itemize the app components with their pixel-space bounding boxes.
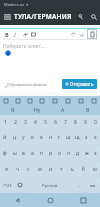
staticText: н xyxy=(49,134,53,141)
button[interactable]: Image xyxy=(29,30,37,38)
button[interactable]: 3 xyxy=(20,115,30,130)
staticText: Ну xyxy=(34,107,41,114)
button[interactable]: Undo xyxy=(69,30,77,38)
button[interactable]: Menu xyxy=(0,10,14,24)
button[interactable]: 2 xyxy=(10,115,20,130)
button[interactable]: и xyxy=(45,161,56,177)
button[interactable]: Tool 0 xyxy=(0,96,12,106)
staticText: 9 xyxy=(84,119,87,126)
button[interactable]: 0 xyxy=(90,115,100,130)
button[interactable]: л xyxy=(64,145,73,161)
button[interactable]: Tool 1 xyxy=(12,96,24,106)
staticText: о xyxy=(58,150,61,157)
button[interactable]: Русский xyxy=(25,177,75,193)
button[interactable]: 1 xyxy=(0,115,10,130)
button[interactable]: у xyxy=(19,130,28,145)
staticText: г xyxy=(58,134,61,141)
button[interactable]: Tool 5 xyxy=(61,96,74,106)
button[interactable]: Tool 7 xyxy=(87,96,100,106)
staticText: Modern.az ▾ xyxy=(4,2,29,7)
button[interactable]: Redo xyxy=(77,30,85,38)
button[interactable]: Back xyxy=(0,193,34,207)
button[interactable]: а xyxy=(28,145,37,161)
staticText: э xyxy=(94,150,97,157)
button[interactable]: Search xyxy=(87,10,100,23)
staticText: с xyxy=(27,166,30,173)
button[interactable]: я xyxy=(0,161,12,177)
button[interactable]: Home xyxy=(34,193,67,207)
button[interactable]: с xyxy=(23,161,34,177)
button[interactable]: 5 xyxy=(40,115,50,130)
button[interactable]: 7 xyxy=(60,115,70,130)
button[interactable]: Ну xyxy=(25,106,50,115)
button[interactable]: н xyxy=(46,130,55,145)
staticText: я xyxy=(5,166,8,173)
staticText: к xyxy=(31,134,34,141)
button[interactable]: Recents xyxy=(67,193,100,207)
button[interactable]: . xyxy=(75,177,85,193)
staticText: 4 xyxy=(34,119,37,126)
button[interactable]: А xyxy=(50,106,75,115)
button[interactable]: й xyxy=(0,130,10,145)
button[interactable]: ц xyxy=(10,130,19,145)
button[interactable]: э xyxy=(91,145,100,161)
button[interactable]: Emoji xyxy=(15,177,25,193)
staticText: ц xyxy=(13,134,17,141)
button[interactable]: Link xyxy=(21,30,29,38)
button[interactable]: ь xyxy=(67,161,78,177)
button[interactable]: р xyxy=(46,145,55,161)
button[interactable]: Call xyxy=(74,10,87,23)
button[interactable]: ы xyxy=(10,145,19,161)
button[interactable]: 9 xyxy=(80,115,90,130)
button[interactable]: х xyxy=(91,130,100,145)
button[interactable]: Я xyxy=(0,106,25,115)
button[interactable]: Tool 4 xyxy=(48,96,61,106)
staticText: ь xyxy=(71,166,74,173)
button[interactable]: т xyxy=(56,161,67,177)
button[interactable]: щ xyxy=(73,130,82,145)
button[interactable]: I xyxy=(11,30,19,38)
staticText: ж xyxy=(85,150,89,157)
staticText: Я xyxy=(11,107,15,114)
staticText: п xyxy=(40,150,44,157)
button[interactable]: ?123 xyxy=(0,177,15,193)
button[interactable]: д xyxy=(73,145,82,161)
button[interactable]: в xyxy=(19,145,28,161)
button[interactable]: ч xyxy=(12,161,23,177)
staticText: 6 xyxy=(54,119,57,126)
button[interactable]: ю xyxy=(89,161,100,177)
button[interactable]: б xyxy=(78,161,89,177)
staticText: т xyxy=(60,166,63,173)
button[interactable]: з xyxy=(82,130,91,145)
button[interactable]: 6 xyxy=(50,115,60,130)
button[interactable]: Attach file xyxy=(87,29,97,39)
button[interactable]: Прикрепить файлы xyxy=(3,82,48,87)
button[interactable]: 8 xyxy=(70,115,80,130)
button[interactable]: ш xyxy=(64,130,73,145)
button[interactable]: Отправить xyxy=(62,79,97,89)
staticText: 3 xyxy=(24,119,27,126)
staticText: в xyxy=(22,150,25,157)
button[interactable]: ж xyxy=(82,145,91,161)
button[interactable]: е xyxy=(37,130,46,145)
button[interactable]: B xyxy=(3,30,11,38)
staticText: м xyxy=(38,166,42,173)
button[interactable]: Enter xyxy=(85,177,100,193)
button[interactable]: о xyxy=(55,145,64,161)
staticText: 1 xyxy=(4,119,7,126)
button[interactable]: 4 xyxy=(30,115,40,130)
staticText: 2 xyxy=(14,119,17,126)
staticText: д xyxy=(76,150,80,157)
button[interactable]: Tool 6 xyxy=(74,96,87,106)
staticText: Прикрепить файлы xyxy=(9,82,47,87)
button[interactable]: ф xyxy=(0,145,10,161)
button[interactable]: к xyxy=(28,130,37,145)
staticText: л xyxy=(67,150,70,157)
button[interactable]: г xyxy=(55,130,64,145)
button[interactable]: В xyxy=(75,106,100,115)
button[interactable]: п xyxy=(37,145,46,161)
button[interactable]: м xyxy=(34,161,45,177)
button[interactable]: Tool 3 xyxy=(36,96,48,106)
staticText: 8 xyxy=(74,119,77,126)
button[interactable]: Tool 2 xyxy=(24,96,36,106)
